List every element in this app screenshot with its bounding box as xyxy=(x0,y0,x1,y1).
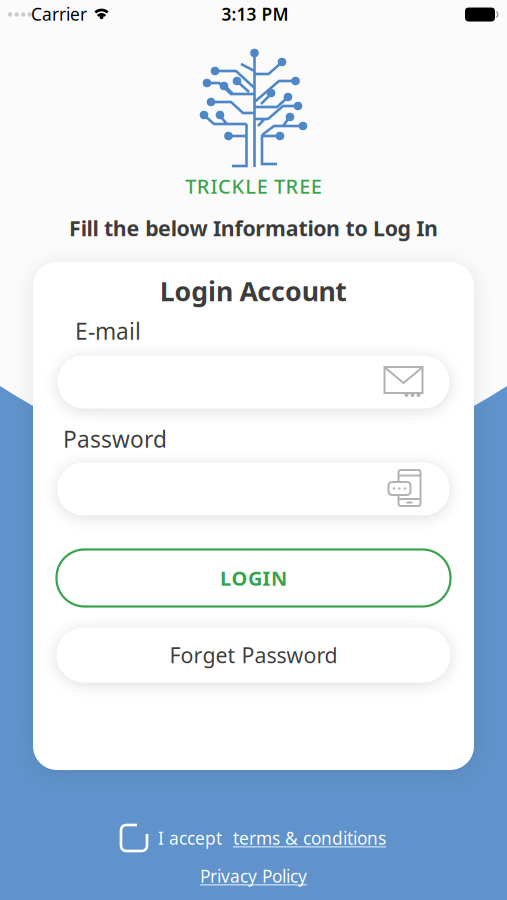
staticText: Password xyxy=(63,424,167,454)
button[interactable]: Forget Password xyxy=(56,627,450,682)
button[interactable]: Privacy Policy xyxy=(200,864,307,887)
staticText: I accept xyxy=(158,826,222,849)
button[interactable]: Password xyxy=(57,462,449,515)
button[interactable]: I accept terms & conditions xyxy=(121,825,386,851)
staticText: Forget Password xyxy=(169,641,337,669)
staticText: Privacy Policy xyxy=(200,864,307,887)
staticText: Carrier xyxy=(31,2,87,25)
button[interactable]: LOGIN xyxy=(56,549,450,606)
staticText: TRICKLE TREE xyxy=(185,173,322,199)
staticText: LOGIN xyxy=(220,565,287,591)
staticText: Login Account xyxy=(160,273,347,309)
staticText: 3:13 PM xyxy=(221,2,288,25)
button[interactable]: terms & conditions xyxy=(233,826,386,849)
staticText: terms & conditions xyxy=(233,826,386,849)
staticText: E-mail xyxy=(75,316,141,346)
button[interactable]: E-mail xyxy=(57,355,449,408)
staticText: Fill the below Information to Log In xyxy=(69,214,438,242)
